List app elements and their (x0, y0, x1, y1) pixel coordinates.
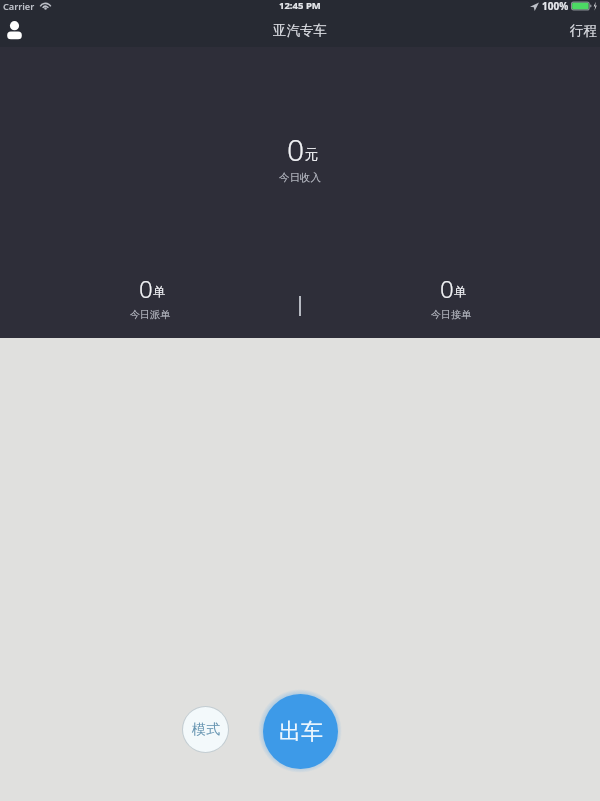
button[interactable]: 出车 (263, 694, 338, 769)
staticText: 0 (139, 272, 153, 305)
staticText: 0 (440, 272, 454, 305)
button[interactable]: 模式 (183, 707, 228, 752)
staticText: 亚汽专车 (273, 22, 327, 39)
button[interactable]: 行程 (570, 22, 600, 39)
staticText: 今日派单 (130, 308, 170, 321)
button[interactable]: Profile (0, 18, 29, 47)
staticText: 12:45 PM (279, 0, 321, 12)
staticText: Carrier (3, 0, 35, 13)
staticText: 模式 (192, 721, 220, 739)
staticText: 0 (287, 129, 305, 170)
staticText: 单 (454, 284, 467, 300)
staticText: 元 (305, 146, 319, 163)
staticText: 单 (153, 284, 166, 300)
staticText: 出车 (279, 718, 323, 746)
staticText: 100% (542, 0, 569, 13)
staticText: 行程 (570, 22, 597, 39)
staticText: 今日收入 (279, 171, 321, 184)
staticText: 今日接单 (431, 308, 471, 321)
